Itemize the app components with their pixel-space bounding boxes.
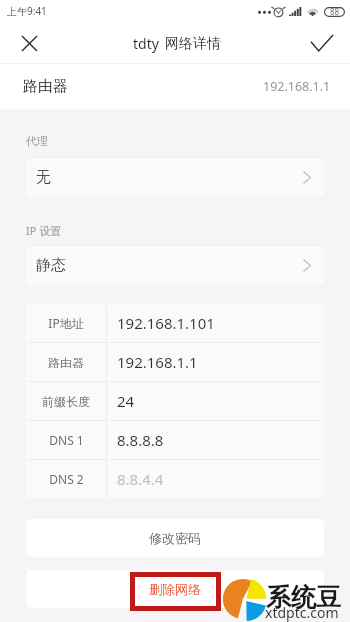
staticText: 上午9:41 xyxy=(7,4,47,18)
button[interactable]: 前缀长度 xyxy=(26,382,324,420)
staticText: 路由器 xyxy=(23,77,68,96)
staticText: 192.168.1.1 xyxy=(117,352,198,372)
staticText: IP 设置 xyxy=(26,223,62,238)
button[interactable]: 路由器 xyxy=(0,64,350,109)
staticText: IP地址 xyxy=(48,315,84,331)
staticText: 路由器 xyxy=(48,355,84,370)
button[interactable]: 静态 xyxy=(26,247,324,284)
staticText: 24 xyxy=(117,391,135,411)
staticText: DNS 1 xyxy=(49,432,84,448)
staticText: tdty xyxy=(133,34,159,53)
button[interactable]: Close xyxy=(7,21,51,65)
staticText: 192.168.1.101 xyxy=(117,313,215,333)
button[interactable]: 路由器 xyxy=(26,343,324,381)
button[interactable]: 修改密码 xyxy=(26,519,324,557)
button[interactable]: DNS 2 xyxy=(26,460,324,498)
staticText: 网络详情 xyxy=(165,35,221,53)
staticText: 前缀长度 xyxy=(42,394,90,409)
staticText: 8.8.8.8 xyxy=(117,430,164,450)
button[interactable]: 删除网络 xyxy=(26,570,324,608)
staticText: 88 xyxy=(330,6,340,17)
staticText: 8.8.4.4 xyxy=(117,469,164,489)
staticText: 修改密码 xyxy=(149,530,201,546)
staticText: 系统豆 xyxy=(266,582,341,613)
staticText: 192.168.1.1 xyxy=(263,78,331,95)
staticText: xtdptc.com xyxy=(265,603,339,622)
button[interactable]: DNS 1 xyxy=(26,421,324,459)
button[interactable]: Confirm xyxy=(300,21,344,65)
button[interactable]: 无 xyxy=(26,159,324,196)
staticText: 无 xyxy=(36,168,51,187)
staticText: DNS 2 xyxy=(49,471,84,487)
staticText: 静态 xyxy=(36,256,66,275)
staticText: 代理 xyxy=(26,134,48,148)
button[interactable]: IP地址 xyxy=(26,304,324,342)
staticText: 删除网络 xyxy=(149,581,201,597)
